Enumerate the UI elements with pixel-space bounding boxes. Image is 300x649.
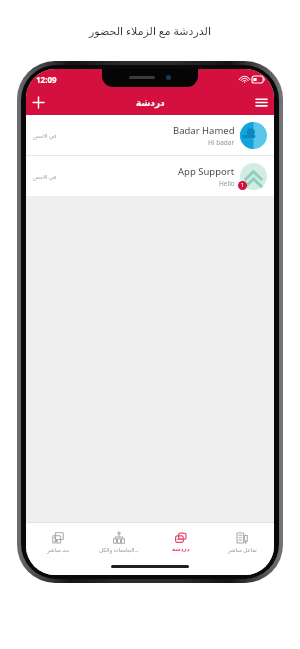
button[interactable]: Menu bbox=[249, 90, 274, 115]
button[interactable]: New chat bbox=[26, 90, 51, 115]
staticText: 12:09 bbox=[36, 74, 57, 85]
button[interactable]: في الامس bbox=[26, 156, 274, 196]
staticText: Hi badar bbox=[208, 138, 235, 147]
button[interactable]: الجامعات والكل... bbox=[90, 523, 148, 561]
staticText: بث مباشر bbox=[47, 546, 70, 553]
staticText: تفاعل مباشر bbox=[228, 546, 257, 553]
staticText: App Support bbox=[178, 165, 235, 178]
staticText: دردشة bbox=[136, 98, 165, 108]
staticText: Badar Hamed bbox=[173, 124, 235, 137]
staticText: في الامس bbox=[33, 132, 57, 139]
staticText: Hello bbox=[219, 179, 235, 188]
staticText: 1 bbox=[241, 182, 244, 189]
staticText: الدردشة مع الزملاء الحضور bbox=[89, 23, 211, 38]
button[interactable]: تفاعل مباشر bbox=[213, 523, 271, 561]
staticText: الجامعات والكل... bbox=[99, 546, 139, 553]
staticText: في الامس bbox=[33, 173, 57, 180]
staticText: دردشة bbox=[172, 546, 190, 552]
button[interactable]: بث مباشر bbox=[29, 523, 87, 561]
button[interactable]: في الامس bbox=[26, 115, 274, 155]
button[interactable]: دردشة bbox=[152, 523, 210, 561]
